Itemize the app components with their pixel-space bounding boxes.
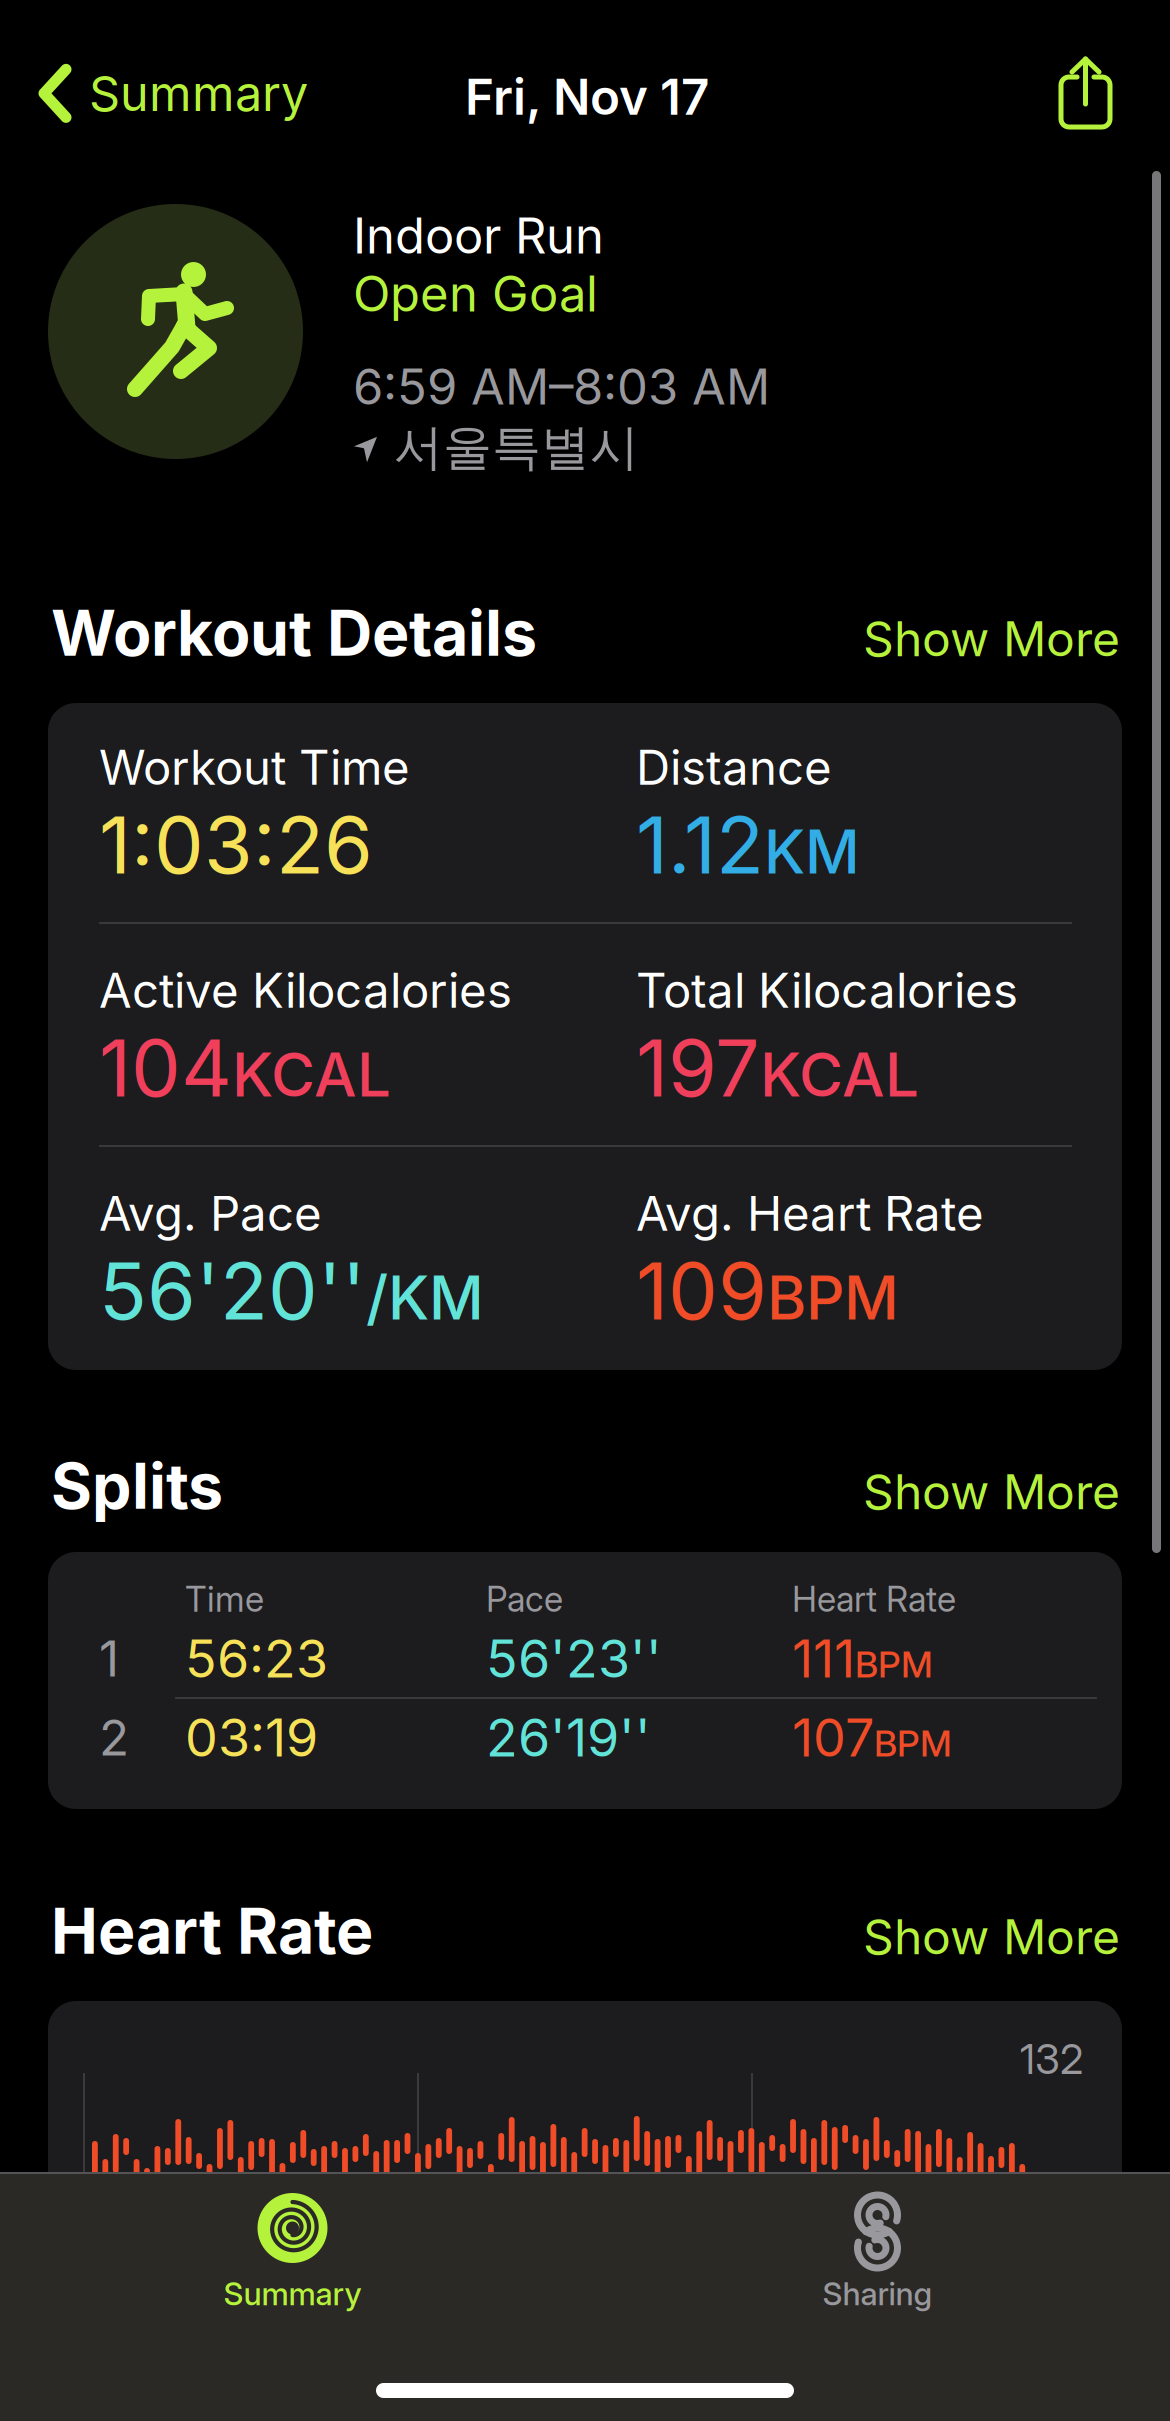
- staticText: Heart Rate: [792, 1578, 956, 1620]
- staticText: KCAL: [760, 1038, 919, 1111]
- staticText: Avg. Heart Rate: [636, 1185, 984, 1242]
- button[interactable]: Sharing: [585, 2193, 1170, 2313]
- staticText: 6:59 AM–8:03 AM: [353, 357, 770, 416]
- staticText: KM: [764, 815, 860, 888]
- staticText: 1: [99, 1629, 119, 1688]
- staticText: Show More: [863, 1908, 1120, 1966]
- button[interactable]: Summary: [18, 50, 328, 137]
- button[interactable]: Show More: [863, 1902, 1120, 1960]
- staticText: 104: [99, 1020, 232, 1115]
- staticText: Summary: [89, 64, 308, 123]
- staticText: 03:19: [185, 1706, 318, 1769]
- staticText: 서울특별시: [394, 417, 639, 479]
- staticText: Sharing: [822, 2275, 932, 2313]
- staticText: 1:03:26: [99, 797, 373, 892]
- staticText: Open Goal: [353, 264, 598, 323]
- staticText: BPM: [874, 1721, 952, 1765]
- staticText: KCAL: [232, 1038, 391, 1111]
- staticText: BPM: [767, 1261, 899, 1334]
- staticText: Fri, Nov 17: [465, 67, 709, 127]
- staticText: 56'23'': [486, 1627, 662, 1690]
- staticText: Show More: [863, 610, 1120, 668]
- staticText: Heart Rate: [51, 1893, 373, 1969]
- button[interactable]: Show More: [863, 604, 1120, 662]
- staticText: Active Kilocalories: [99, 962, 512, 1019]
- button[interactable]: Share: [1032, 39, 1139, 147]
- button[interactable]: Summary: [0, 2193, 585, 2313]
- staticText: BPM: [855, 1642, 933, 1686]
- staticText: Pace: [486, 1578, 563, 1620]
- staticText: 132: [1020, 2034, 1083, 2084]
- staticText: Workout Time: [99, 739, 410, 796]
- staticText: Show More: [863, 1463, 1120, 1521]
- staticText: Time: [185, 1578, 264, 1620]
- staticText: 107: [792, 1706, 874, 1769]
- staticText: 26'19'': [486, 1706, 651, 1769]
- staticText: Indoor Run: [353, 206, 604, 265]
- staticText: 1.12: [636, 797, 764, 892]
- staticText: Workout Details: [51, 595, 537, 671]
- staticText: Summary: [223, 2275, 361, 2313]
- staticText: Distance: [636, 739, 832, 796]
- staticText: /KM: [366, 1261, 484, 1334]
- staticText: Total Kilocalories: [636, 962, 1018, 1019]
- button[interactable]: Show More: [863, 1457, 1120, 1515]
- staticText: Splits: [51, 1448, 223, 1524]
- staticText: Avg. Pace: [99, 1185, 322, 1242]
- staticText: 111: [792, 1627, 855, 1690]
- staticText: 109: [636, 1243, 767, 1338]
- staticText: 2: [99, 1708, 129, 1767]
- staticText: 56'20'': [99, 1243, 366, 1338]
- staticText: 197: [636, 1020, 760, 1115]
- staticText: 56:23: [185, 1627, 328, 1690]
